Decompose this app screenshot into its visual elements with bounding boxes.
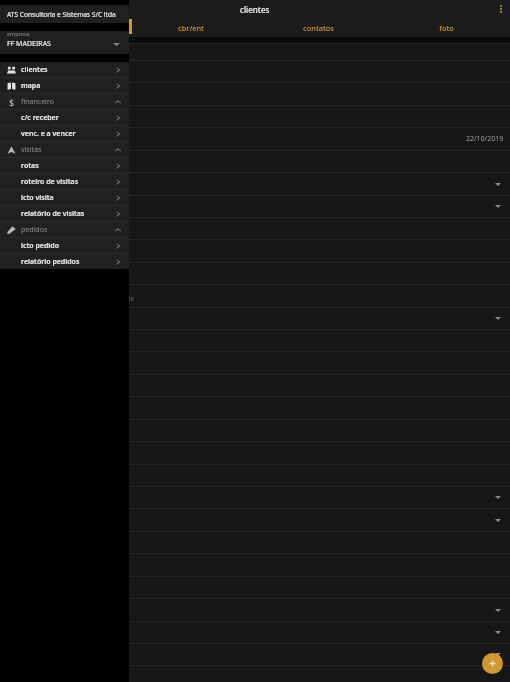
button[interactable] <box>0 240 510 262</box>
staticText: relatório pedidos <box>21 257 80 267</box>
staticText: visitas <box>21 145 42 155</box>
staticText: clientes <box>240 4 270 15</box>
button[interactable]: c/c receber <box>0 110 129 126</box>
staticText: clientes <box>21 65 48 75</box>
button[interactable] <box>0 554 510 576</box>
button[interactable] <box>0 643 510 665</box>
staticText: FF MADEIRAS <box>7 39 51 49</box>
button[interactable] <box>0 397 510 419</box>
button[interactable] <box>0 217 510 239</box>
button[interactable] <box>0 509 510 531</box>
staticText: pedidos <box>21 225 48 235</box>
button[interactable] <box>0 330 510 352</box>
button[interactable] <box>0 105 510 127</box>
staticText: foto <box>439 23 454 33</box>
button[interactable] <box>0 150 510 172</box>
staticText: c/c receber <box>21 113 59 123</box>
button[interactable] <box>0 307 510 329</box>
staticText: $ <box>9 96 15 108</box>
button[interactable]: relatório de visitas <box>0 206 129 222</box>
button[interactable] <box>0 464 510 486</box>
button[interactable]: clientes <box>0 62 129 78</box>
button[interactable] <box>0 61 510 83</box>
staticText: 22/10/2019 <box>466 134 504 144</box>
staticText: cadastro <box>48 23 79 33</box>
button[interactable]: empresa <box>0 31 129 54</box>
staticText: venc. e a vencer <box>21 129 76 139</box>
button[interactable] <box>0 442 510 464</box>
button[interactable]: lcto visita <box>0 190 129 206</box>
button[interactable] <box>0 173 510 195</box>
button[interactable] <box>0 83 510 105</box>
staticText: lcto visita <box>21 193 54 203</box>
button[interactable]: relatório pedidos <box>0 254 129 269</box>
button[interactable] <box>0 621 510 643</box>
button[interactable]: mapa <box>0 78 129 94</box>
button[interactable]: cbr/ent <box>127 18 254 37</box>
button[interactable]: contatos <box>254 18 382 37</box>
staticText: cbr/ent <box>178 23 204 33</box>
button[interactable] <box>0 576 510 598</box>
button[interactable] <box>0 195 510 217</box>
button[interactable]: visitas <box>0 142 129 158</box>
staticText: lcto pedido <box>21 241 60 251</box>
staticText: roteiro de visitas <box>21 177 79 187</box>
button[interactable]: lcto pedido <box>0 238 129 254</box>
button[interactable]: $ <box>0 94 129 110</box>
button[interactable]: ATS Consultoria e Sistemas S/C ltda <box>0 5 129 23</box>
button[interactable]: foto <box>382 18 510 37</box>
button[interactable]: cadastro <box>0 18 127 37</box>
button[interactable]: cliente <box>0 285 510 307</box>
button[interactable] <box>0 374 510 396</box>
staticText: ATS Consultoria e Sistemas S/C ltda <box>7 10 116 19</box>
staticText: relatório de visitas <box>21 209 85 219</box>
button[interactable] <box>0 44 510 61</box>
button[interactable]: 22/10/2019 <box>0 128 510 150</box>
button[interactable]: venc. e a vencer <box>0 126 129 142</box>
staticText: rotas <box>21 161 39 171</box>
staticText: empresa <box>7 30 30 37</box>
button[interactable] <box>0 352 510 374</box>
staticText: mapa <box>21 81 41 91</box>
button[interactable] <box>0 599 510 621</box>
button[interactable]: rotas <box>0 158 129 174</box>
button[interactable]: More options <box>492 0 510 18</box>
button[interactable] <box>0 262 510 284</box>
button[interactable]: pedidos <box>0 222 129 238</box>
button[interactable] <box>0 486 510 508</box>
button[interactable] <box>0 419 510 441</box>
button[interactable]: roteiro de visitas <box>0 174 129 190</box>
button[interactable] <box>0 531 510 553</box>
staticText: financeiro <box>21 97 54 107</box>
staticText: cliente <box>114 294 135 303</box>
staticText: contatos <box>303 23 334 33</box>
button[interactable]: Add client <box>482 653 503 674</box>
